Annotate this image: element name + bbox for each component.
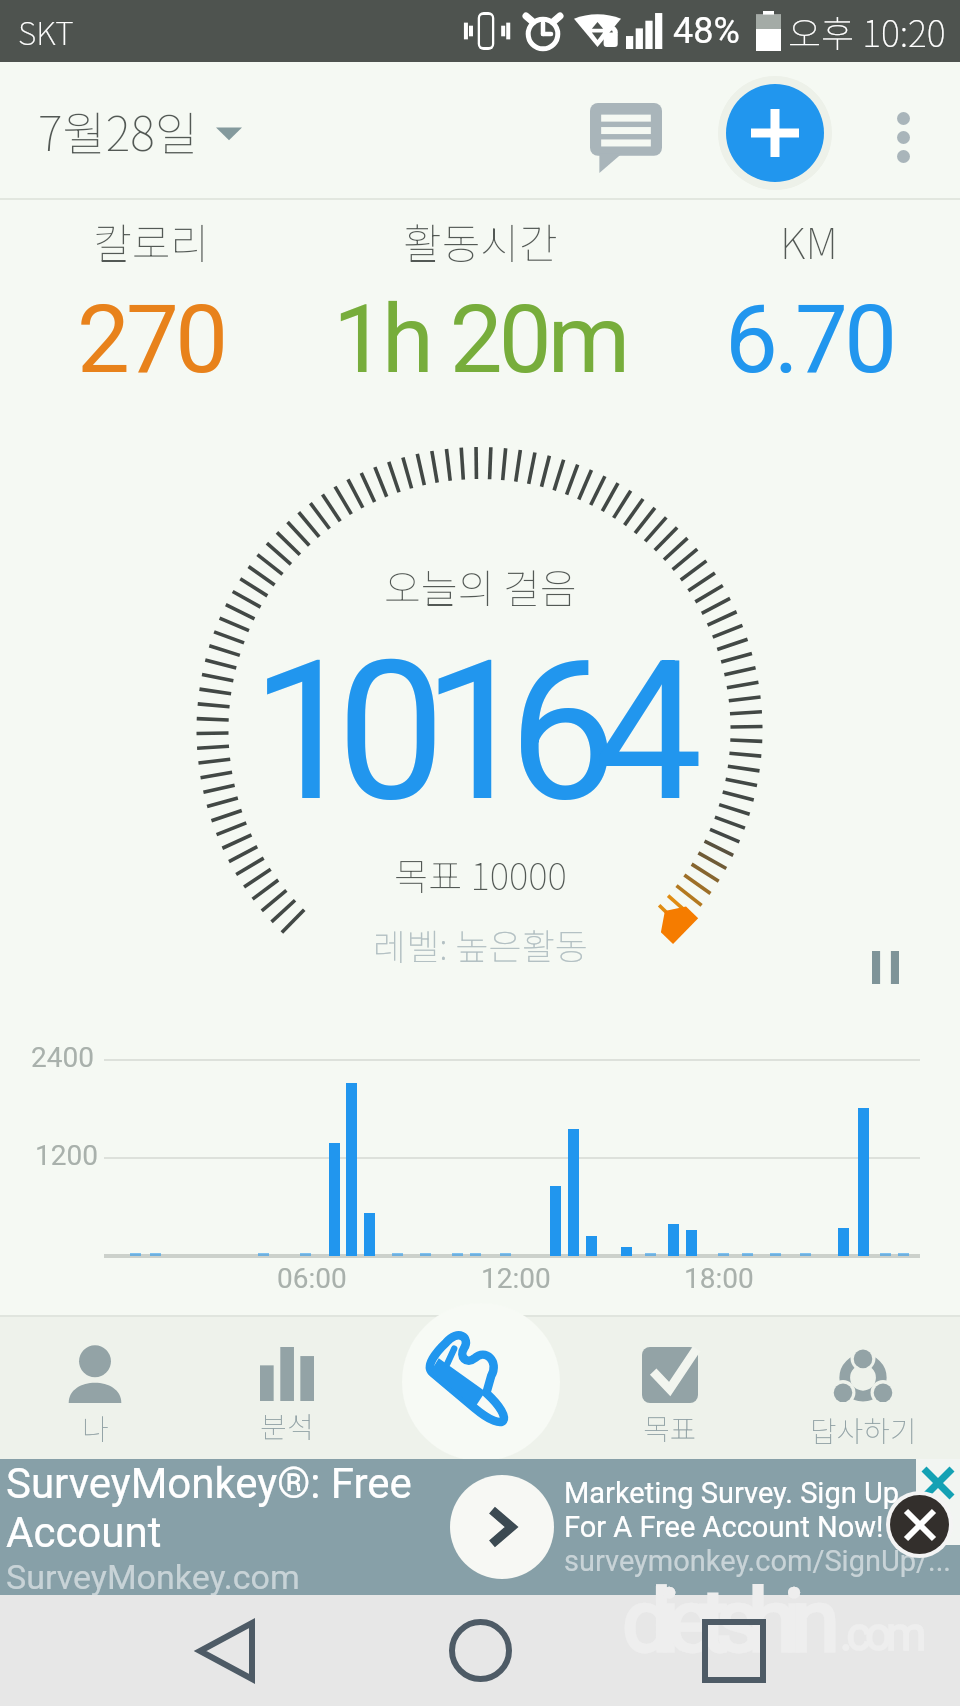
button[interactable]: 답사하기: [773, 1315, 953, 1459]
staticText: dietshin: [622, 1569, 827, 1672]
staticText: 분석: [260, 1404, 314, 1446]
staticText: surveymonkey.com/SignUp/...: [564, 1544, 951, 1578]
button[interactable]: Close ad: [916, 1459, 960, 1507]
staticText: 270: [77, 285, 225, 377]
button[interactable]: Home: [434, 1595, 526, 1706]
staticText: 목표 10000: [394, 847, 567, 901]
staticText: 1200: [35, 1139, 98, 1172]
staticText: 칼로리: [93, 210, 209, 271]
button[interactable]: 나: [5, 1315, 185, 1459]
button[interactable]: Steps: [402, 1303, 560, 1461]
staticText: SurveyMonkey®: Free: [6, 1459, 412, 1508]
staticText: For A Free Account Now!: [564, 1510, 884, 1544]
staticText: SKT: [18, 8, 74, 54]
button[interactable]: KM: [649, 197, 960, 377]
staticText: 7월28일: [38, 96, 198, 164]
button[interactable]: 7월28일: [26, 80, 254, 180]
staticText: SurveyMonkey.com: [6, 1557, 300, 1595]
staticText: 목표: [643, 1406, 697, 1448]
staticText: 06:00: [277, 1262, 347, 1295]
button[interactable]: Dismiss: [886, 1491, 953, 1558]
button[interactable]: 칼로리: [0, 197, 311, 377]
button[interactable]: SurveyMonkey®: Free: [0, 1459, 960, 1595]
staticText: Account: [6, 1508, 162, 1557]
staticText: 1h 20m: [333, 285, 627, 377]
button[interactable]: Recents: [688, 1595, 780, 1706]
button[interactable]: 활동시간: [320, 197, 640, 377]
staticText: 활동시간: [403, 210, 558, 271]
staticText: 48%: [673, 10, 740, 52]
staticText: Marketing Survey. Sign Up: [564, 1476, 899, 1510]
button[interactable]: Back: [180, 1595, 272, 1706]
staticText: KM: [780, 210, 838, 271]
staticText: 오후 10:20: [788, 5, 946, 57]
staticText: 12:00: [481, 1262, 551, 1295]
button[interactable]: Add: [718, 76, 832, 190]
button[interactable]: More options: [858, 92, 948, 182]
button[interactable]: Messages: [571, 83, 681, 193]
staticText: 오늘의 걸음: [384, 557, 577, 615]
staticText: 나: [82, 1406, 109, 1448]
staticText: 답사하기: [810, 1408, 917, 1450]
staticText: 6.70: [725, 285, 894, 377]
button[interactable]: 분석: [197, 1315, 377, 1459]
button[interactable]: Open ad: [450, 1475, 554, 1579]
staticText: 2400: [31, 1041, 94, 1074]
button[interactable]: 목표: [580, 1315, 760, 1459]
staticText: 레벨: 높은활동: [373, 918, 588, 970]
staticText: 18:00: [684, 1262, 754, 1295]
button[interactable]: Pause: [853, 935, 917, 999]
staticText: 10164: [251, 619, 680, 845]
